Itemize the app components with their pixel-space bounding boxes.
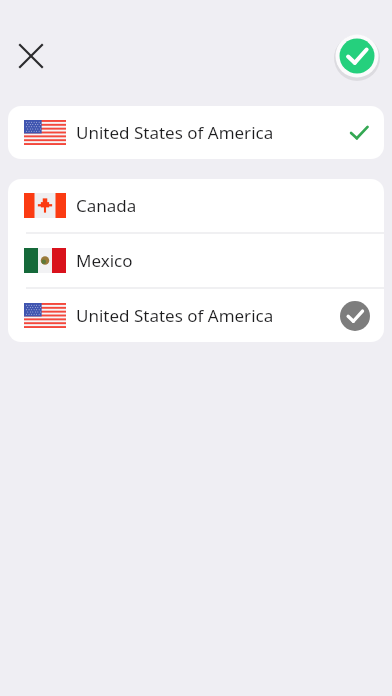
button[interactable]: Mexico (8, 234, 384, 287)
staticText: United States of America (76, 121, 274, 144)
button[interactable]: Confirm (334, 33, 380, 79)
button[interactable]: Close (9, 34, 53, 78)
staticText: Mexico (76, 249, 133, 272)
button[interactable]: Canada (8, 179, 384, 232)
staticText: Canada (76, 194, 137, 217)
staticText: United States of America (76, 304, 274, 327)
button[interactable]: United States of America (8, 289, 384, 342)
button[interactable]: United States of America (8, 106, 384, 159)
